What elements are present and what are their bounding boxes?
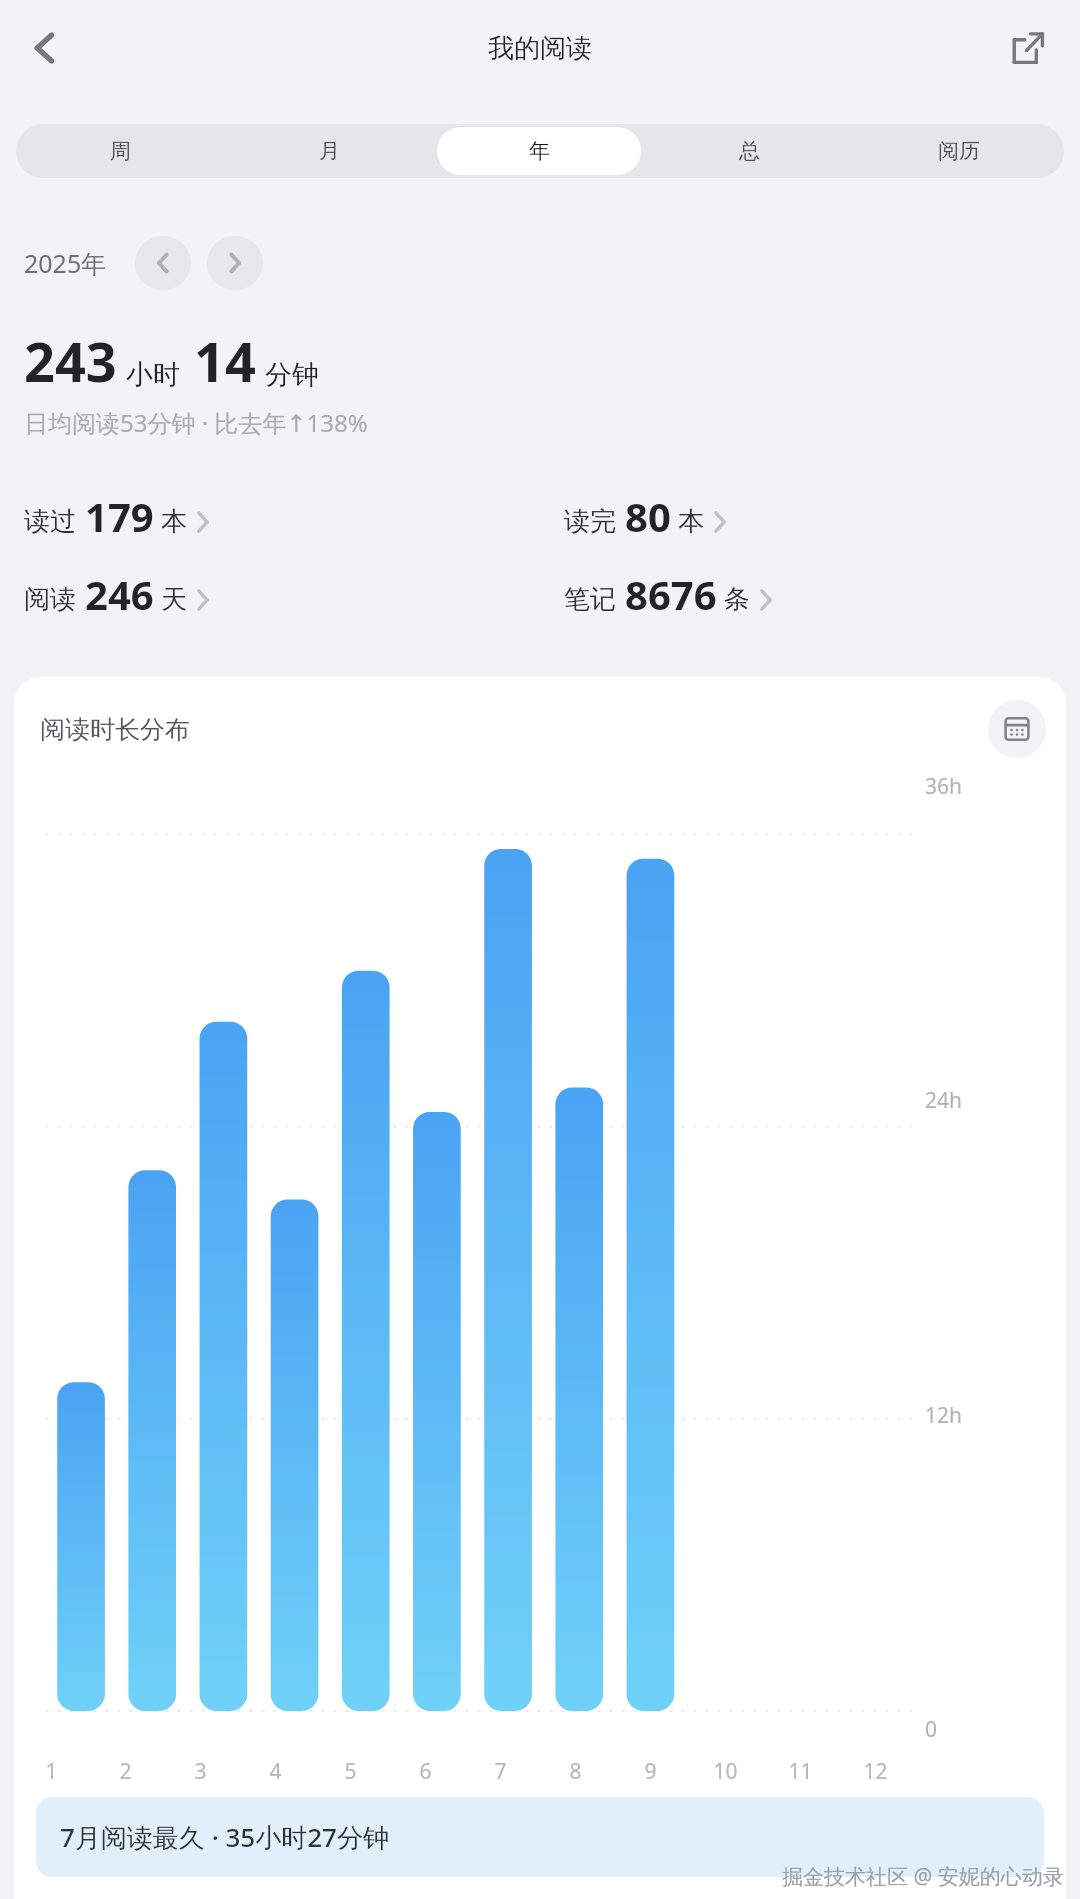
- button[interactable]: Next year: [207, 236, 263, 290]
- button[interactable]: 读完: [564, 487, 727, 545]
- staticText: 10: [713, 1757, 738, 1786]
- staticText: 条: [724, 583, 750, 616]
- staticText: 月: [319, 138, 340, 164]
- button[interactable]: 笔记: [564, 565, 773, 623]
- staticText: 1: [45, 1757, 58, 1786]
- staticText: 7月阅读最久 · 35小时27分钟: [60, 1819, 389, 1855]
- staticText: 阅读: [24, 583, 76, 616]
- staticText: 36h: [925, 772, 963, 801]
- staticText: 读过: [24, 505, 76, 538]
- button[interactable]: 读过: [24, 487, 210, 545]
- staticText: 总: [739, 138, 760, 164]
- staticText: 0: [925, 1715, 938, 1744]
- staticText: 5: [344, 1757, 357, 1786]
- button[interactable]: Previous year: [135, 236, 191, 290]
- button[interactable]: Back: [12, 15, 78, 81]
- staticText: 阅历: [938, 138, 980, 164]
- staticText: 分钟: [265, 358, 319, 392]
- button[interactable]: 总: [647, 127, 851, 175]
- staticText: 2025年: [24, 246, 107, 280]
- staticText: 24h: [925, 1086, 963, 1115]
- button[interactable]: 阅历: [857, 127, 1061, 175]
- staticText: 掘金技术社区 @ 安妮的心动录: [782, 1862, 1064, 1891]
- button[interactable]: 7月阅读最久 · 35小时27分钟: [36, 1797, 1044, 1877]
- staticText: 我的阅读: [488, 32, 592, 65]
- staticText: 2: [119, 1757, 132, 1786]
- staticText: 7: [494, 1757, 507, 1786]
- staticText: 179: [85, 489, 154, 543]
- staticText: 年: [529, 138, 550, 164]
- staticText: 11: [788, 1757, 813, 1786]
- staticText: 天: [161, 583, 187, 616]
- staticText: 8676: [625, 567, 717, 621]
- staticText: 9: [644, 1757, 657, 1786]
- staticText: 12: [863, 1757, 888, 1786]
- staticText: 本: [678, 505, 704, 538]
- staticText: 6: [419, 1757, 432, 1786]
- staticText: 本: [161, 505, 187, 538]
- staticText: 8: [569, 1757, 582, 1786]
- staticText: 12h: [925, 1401, 963, 1430]
- staticText: 4: [269, 1757, 282, 1786]
- staticText: 周: [110, 138, 131, 164]
- staticText: 日均阅读53分钟 · 比去年↑138%: [24, 406, 368, 439]
- button[interactable]: 周: [19, 127, 222, 175]
- staticText: 读完: [564, 505, 616, 538]
- staticText: 14: [194, 324, 256, 398]
- staticText: 80: [625, 489, 671, 543]
- button[interactable]: 月: [228, 127, 431, 175]
- staticText: 阅读时长分布: [40, 714, 190, 745]
- staticText: 笔记: [564, 583, 616, 616]
- staticText: 小时: [126, 358, 180, 392]
- button[interactable]: 年: [437, 127, 641, 175]
- button[interactable]: 阅读: [24, 565, 210, 623]
- staticText: 243: [24, 324, 117, 398]
- button[interactable]: Calendar: [988, 700, 1046, 758]
- staticText: 3: [194, 1757, 207, 1786]
- button[interactable]: Share: [998, 18, 1058, 78]
- staticText: 246: [85, 567, 154, 621]
